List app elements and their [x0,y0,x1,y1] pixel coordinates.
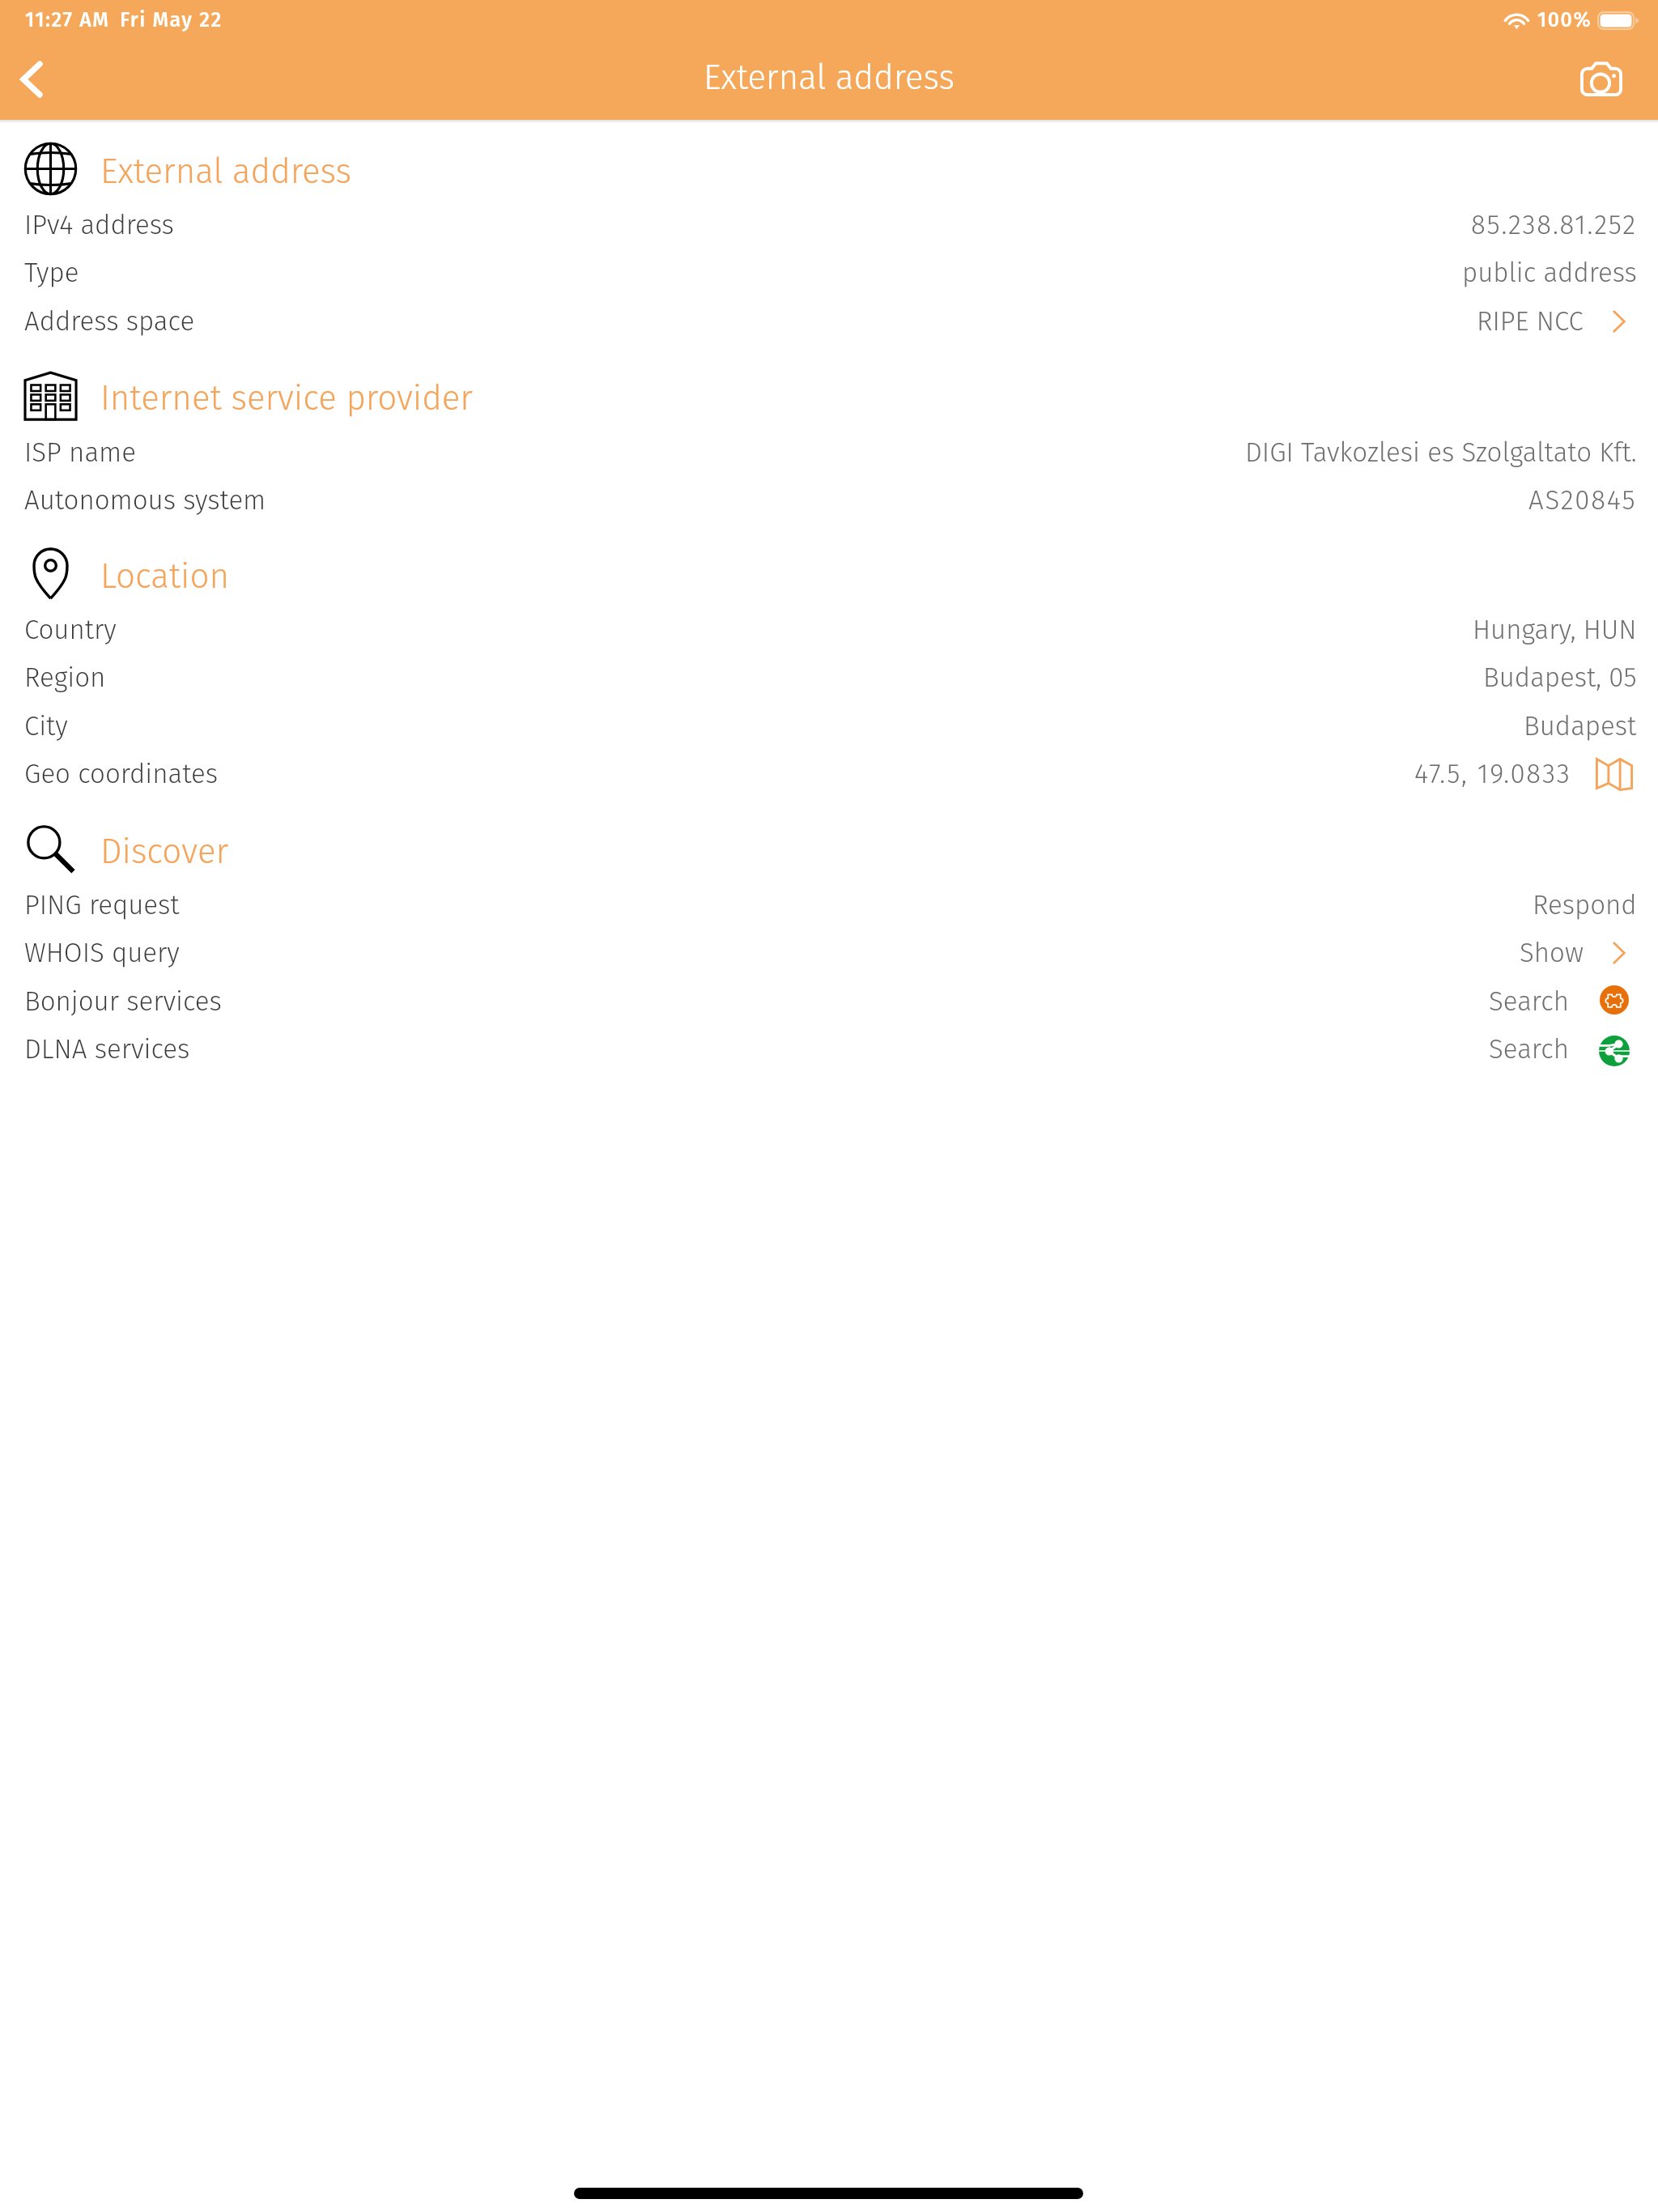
staticText: External address [704,57,955,98]
staticText: Address space [24,305,195,338]
button[interactable]: Region [0,660,1658,696]
staticText: WHOIS query [24,937,180,969]
staticText: Budapest [1524,710,1637,742]
button[interactable]: DLNA services [0,1032,1658,1067]
staticText: 11:27 AM [25,8,110,32]
staticText: Autonomous system [24,484,266,517]
staticText: Location [100,556,229,597]
staticText: 85.238.81.252 [1471,209,1637,241]
staticText: public address [1462,257,1637,289]
staticText: Type [24,257,79,289]
staticText: RIPE NCC [1477,305,1584,338]
staticText: 47.5, 19.0833 [1414,758,1571,790]
button[interactable]: ISP name [0,435,1658,470]
button[interactable]: Autonomous system [0,483,1658,518]
button[interactable]: City [0,708,1658,744]
staticText: City [24,710,68,742]
staticText: Search [1489,985,1569,1018]
staticText: PING request [24,889,180,921]
button[interactable]: Type [0,255,1658,291]
staticText: Budapest, 05 [1483,661,1637,694]
staticText: Respond [1533,889,1637,921]
button[interactable]: PING request [0,887,1658,923]
staticText: Region [24,661,106,694]
staticText: DIGI Tavkozlesi es Szolgaltato Kft. [1245,436,1637,469]
staticText: Search [1489,1033,1569,1066]
staticText: Show [1520,937,1584,969]
button[interactable]: Open map [1571,756,1637,792]
button[interactable]: WHOIS query [0,935,1658,971]
staticText: IPv4 address [24,209,174,241]
staticText: Internet service provider [100,378,473,419]
button[interactable]: Bonjour [1569,984,1637,1019]
button[interactable]: Country [0,612,1658,648]
button[interactable]: Geo coordinates [0,756,1658,792]
staticText: Hungary, HUN [1473,614,1637,646]
staticText: Fri May 22 [120,8,223,32]
button[interactable]: Back [0,39,81,120]
staticText: Bonjour services [24,985,222,1018]
button[interactable]: DLNA [1569,1032,1637,1067]
staticText: Discover [100,832,229,872]
staticText: External address [100,151,352,192]
button[interactable]: Address space [0,304,1658,339]
staticText: AS20845 [1528,484,1637,517]
staticText: Geo coordinates [24,758,219,790]
staticText: DLNA services [24,1033,190,1066]
staticText: 100% [1537,8,1592,32]
button[interactable]: Camera [1577,39,1658,120]
staticText: Country [24,614,117,646]
button[interactable]: Bonjour services [0,984,1658,1019]
staticText: ISP name [24,436,136,469]
button[interactable]: IPv4 address [0,207,1658,243]
